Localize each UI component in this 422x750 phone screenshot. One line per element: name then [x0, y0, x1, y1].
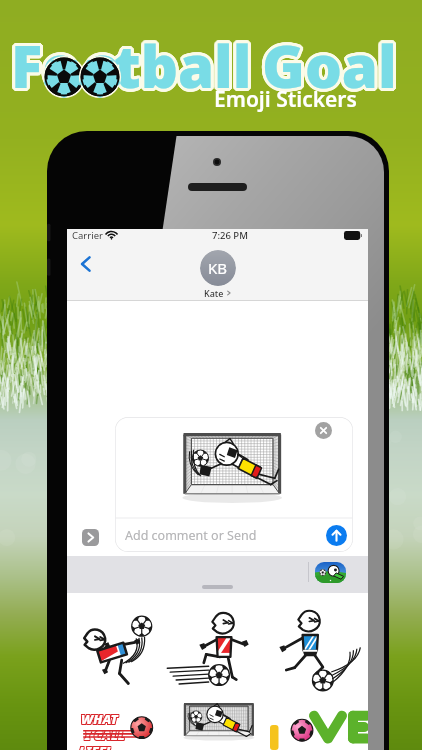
staticText: o: [81, 25, 118, 104]
staticText: o: [81, 27, 118, 106]
staticText: o: [86, 28, 123, 107]
staticText: Fo: [11, 26, 80, 105]
button[interactable]: Goalkeeper save sticker: [168, 698, 268, 750]
staticText: Goal: [262, 29, 397, 108]
staticText: LIFE!: [80, 743, 112, 750]
staticText: LIFE!: [78, 743, 110, 750]
staticText: tball: [113, 23, 251, 102]
staticText: tball: [117, 25, 255, 104]
staticText: tball: [115, 23, 253, 102]
button[interactable]: Shooting sticker: [268, 593, 368, 698]
staticText: Fo: [10, 29, 79, 108]
staticText: o: [87, 27, 124, 106]
staticText: Goal: [264, 24, 399, 103]
button[interactable]: Remove sticker: [115, 417, 353, 552]
staticText: KB: [208, 258, 228, 278]
staticText: tball: [116, 28, 254, 107]
staticText: tball: [114, 26, 252, 105]
staticText: I CALL: [85, 725, 125, 743]
staticText: Goal: [262, 26, 397, 105]
button[interactable]: Bicycle kick sticker: [67, 593, 168, 698]
staticText: Goal: [265, 26, 400, 105]
staticText: WHAT: [82, 711, 119, 729]
staticText: o: [85, 29, 122, 108]
staticText: WHAT: [80, 710, 117, 728]
button[interactable]: App drawer: [82, 529, 99, 546]
staticText: o: [82, 28, 119, 107]
staticText: LIFE!: [79, 743, 111, 750]
staticText: o: [81, 26, 118, 105]
staticText: Fo: [10, 23, 79, 102]
staticText: tball: [117, 26, 255, 105]
staticText: WHAT: [80, 709, 117, 727]
button[interactable]: Dribbling sticker: [168, 593, 268, 698]
staticText: Emoji Stickers: [214, 85, 357, 114]
staticText: Fo: [14, 27, 83, 106]
staticText: o: [83, 23, 120, 102]
staticText: LIFE!: [78, 742, 110, 750]
button[interactable]: What I call life sticker: [67, 698, 168, 750]
staticText: tball: [116, 24, 254, 103]
staticText: tball: [117, 27, 255, 106]
staticText: Goal: [262, 23, 397, 102]
staticText: WHAT: [82, 709, 119, 727]
staticText: WHAT: [81, 710, 118, 728]
staticText: tball: [114, 29, 252, 108]
staticText: tball: [113, 29, 251, 108]
staticText: Goal: [263, 23, 398, 102]
staticText: I CALL: [86, 725, 126, 743]
staticText: Goal: [264, 28, 399, 107]
staticText: tball: [115, 29, 253, 108]
staticText: I CALL: [84, 726, 124, 744]
staticText: 7:26 PM: [212, 229, 248, 242]
staticText: tball: [111, 26, 249, 105]
staticText: o: [85, 23, 122, 102]
staticText: tball: [111, 27, 249, 106]
staticText: Fo: [12, 23, 81, 102]
staticText: Goal: [259, 27, 394, 106]
button[interactable]: Send: [326, 525, 347, 546]
staticText: I CALL: [86, 726, 126, 744]
staticText: LIFE!: [80, 742, 112, 750]
button[interactable]: KB: [200, 250, 236, 299]
staticText: tball: [111, 25, 249, 104]
staticText: Fo: [8, 26, 77, 105]
staticText: LIFE!: [80, 741, 112, 750]
staticText: Fo: [8, 25, 77, 104]
staticText: I CALL: [86, 727, 126, 745]
staticText: tball: [112, 28, 250, 107]
staticText: o: [87, 26, 124, 105]
staticText: o: [82, 24, 119, 103]
staticText: Goal: [260, 24, 395, 103]
staticText: tball: [114, 23, 252, 102]
staticText: Goal: [261, 23, 396, 102]
button[interactable]: Football Goal sticker pack: [315, 562, 346, 583]
staticText: o: [87, 25, 124, 104]
staticText: o: [83, 29, 120, 108]
button[interactable]: Love football sticker: [268, 698, 368, 750]
staticText: I CALL: [84, 727, 124, 745]
staticText: Goal: [265, 27, 400, 106]
staticText: Goal: [259, 26, 394, 105]
staticText: Goal: [259, 25, 394, 104]
staticText: Fo: [12, 29, 81, 108]
button[interactable]: Remove sticker: [315, 422, 332, 439]
staticText: Goal: [261, 29, 396, 108]
staticText: WHAT: [80, 711, 117, 729]
staticText: Fo: [11, 23, 80, 102]
staticText: Fo: [14, 26, 83, 105]
staticText: o: [84, 29, 121, 108]
staticText: tball: [112, 24, 250, 103]
staticText: LIFE!: [78, 741, 110, 750]
staticText: Fo: [13, 24, 82, 103]
staticText: Goal: [260, 28, 395, 107]
staticText: WHAT: [82, 710, 119, 728]
button[interactable]: Back: [75, 253, 97, 275]
staticText: LIFE!: [79, 741, 111, 750]
staticText: Fo: [13, 28, 82, 107]
staticText: o: [84, 26, 121, 105]
staticText: WHAT: [81, 709, 118, 727]
staticText: Goal: [263, 29, 398, 108]
staticText: Kate: [204, 287, 224, 299]
staticText: Fo: [9, 24, 78, 103]
